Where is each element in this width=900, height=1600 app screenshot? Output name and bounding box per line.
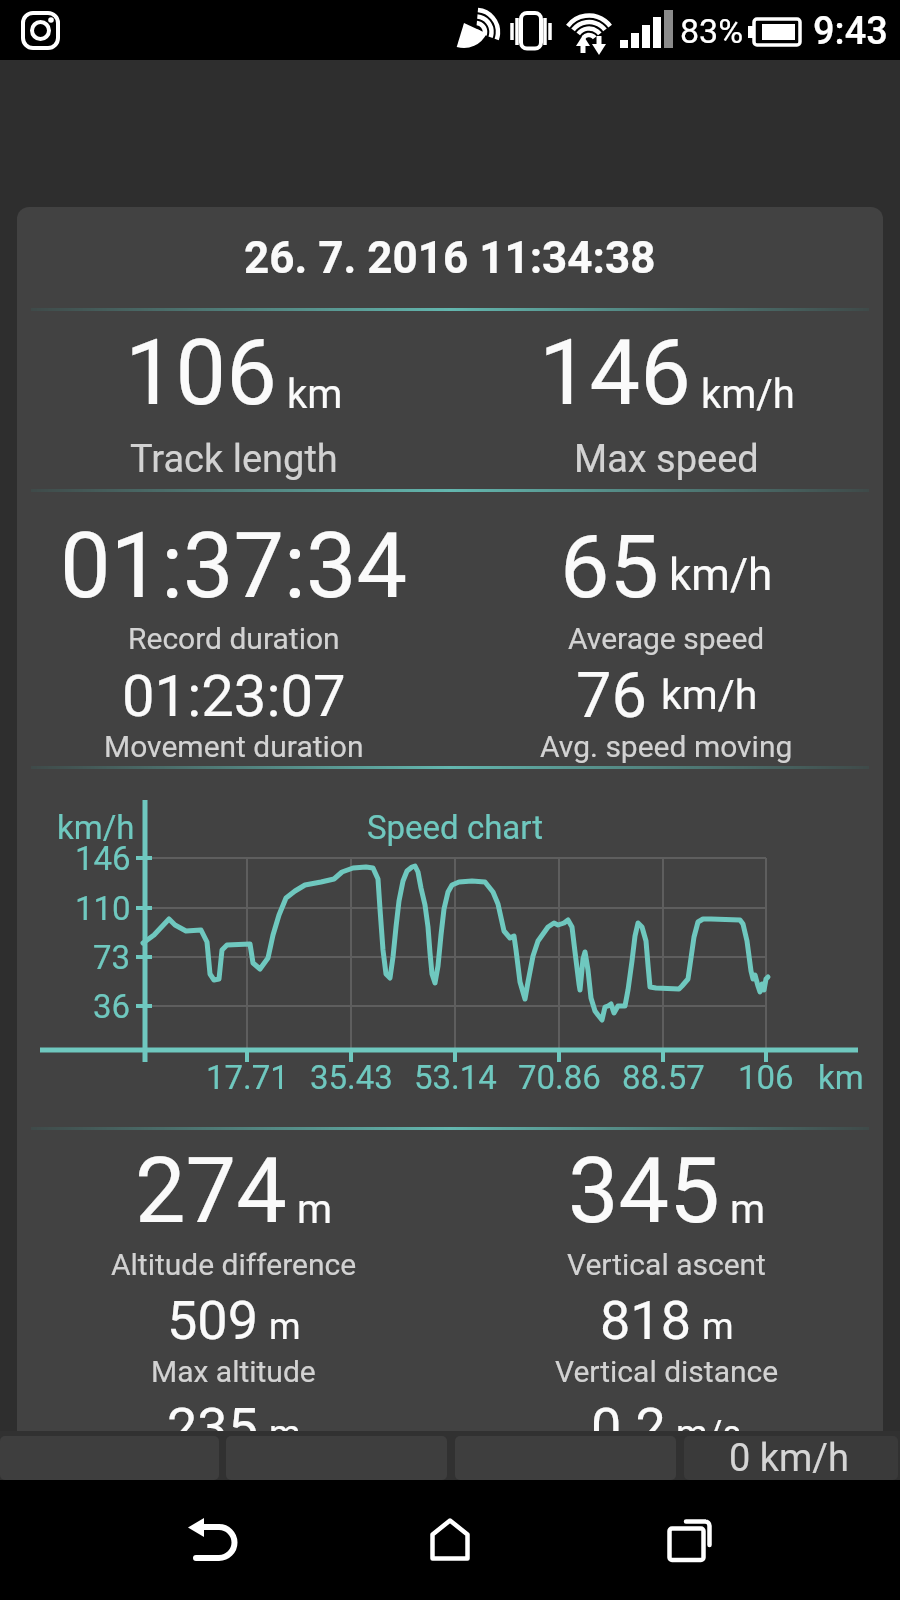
button[interactable]: 0 km/h xyxy=(684,1436,898,1480)
staticText: 509 xyxy=(167,1289,259,1352)
staticText: Speed chart xyxy=(367,808,544,847)
staticText: 36 xyxy=(93,987,131,1026)
staticText: Vertical distance xyxy=(555,1354,779,1389)
staticText: km/h xyxy=(661,671,758,719)
staticText: 65 xyxy=(560,515,659,609)
staticText: m xyxy=(730,1186,766,1233)
staticText: 88.57 xyxy=(622,1058,705,1097)
staticText: Avg. speed moving xyxy=(540,729,793,764)
staticText: 106 xyxy=(738,1058,794,1097)
staticText: 83% xyxy=(680,11,744,51)
staticText: m xyxy=(269,1413,301,1455)
staticText: m xyxy=(269,1306,301,1348)
staticText: Average speed xyxy=(568,621,765,656)
staticText: 53.14 xyxy=(414,1058,497,1097)
staticText: 35.43 xyxy=(310,1058,393,1097)
staticText: 0.2 xyxy=(591,1396,666,1459)
staticText: 146 xyxy=(539,321,691,426)
staticText: Record duration xyxy=(128,621,340,656)
button[interactable] xyxy=(628,1495,748,1595)
staticText: 70.86 xyxy=(518,1058,601,1097)
staticText: m xyxy=(702,1306,734,1348)
button[interactable] xyxy=(150,1495,270,1595)
staticText: 01:23:07 xyxy=(122,662,346,726)
staticText: m xyxy=(297,1186,333,1233)
staticText: Altitude difference xyxy=(111,1247,357,1282)
staticText: 0 km/h xyxy=(729,1436,849,1480)
staticText: 17.71 xyxy=(206,1058,289,1097)
staticText: km/h xyxy=(669,549,773,601)
staticText: km xyxy=(818,1058,864,1097)
staticText: Vertical ascent xyxy=(567,1247,766,1282)
staticText: 235 xyxy=(167,1396,259,1459)
staticText: m/s xyxy=(676,1413,742,1455)
staticText: 01:37:34 xyxy=(60,514,408,608)
button[interactable] xyxy=(390,1495,510,1595)
staticText: 106 xyxy=(125,321,277,426)
staticText: 26. 7. 2016 11:34:38 xyxy=(244,232,656,284)
staticText: 274 xyxy=(135,1139,287,1241)
staticText: 345 xyxy=(568,1139,720,1241)
staticText: Movement duration xyxy=(104,729,364,764)
staticText: km/h xyxy=(57,808,135,847)
staticText: 110 xyxy=(75,889,131,928)
staticText: Max altitude xyxy=(151,1354,316,1389)
staticText: 73 xyxy=(93,938,131,977)
staticText: Track length xyxy=(130,437,338,482)
staticText: km xyxy=(287,371,343,418)
staticText: 818 xyxy=(600,1289,692,1352)
staticText: 76 xyxy=(576,659,647,723)
staticText: 146 xyxy=(75,839,131,878)
staticText: km/h xyxy=(701,371,795,418)
staticText: Max speed xyxy=(574,437,759,482)
staticText: 9:43 xyxy=(813,9,888,54)
